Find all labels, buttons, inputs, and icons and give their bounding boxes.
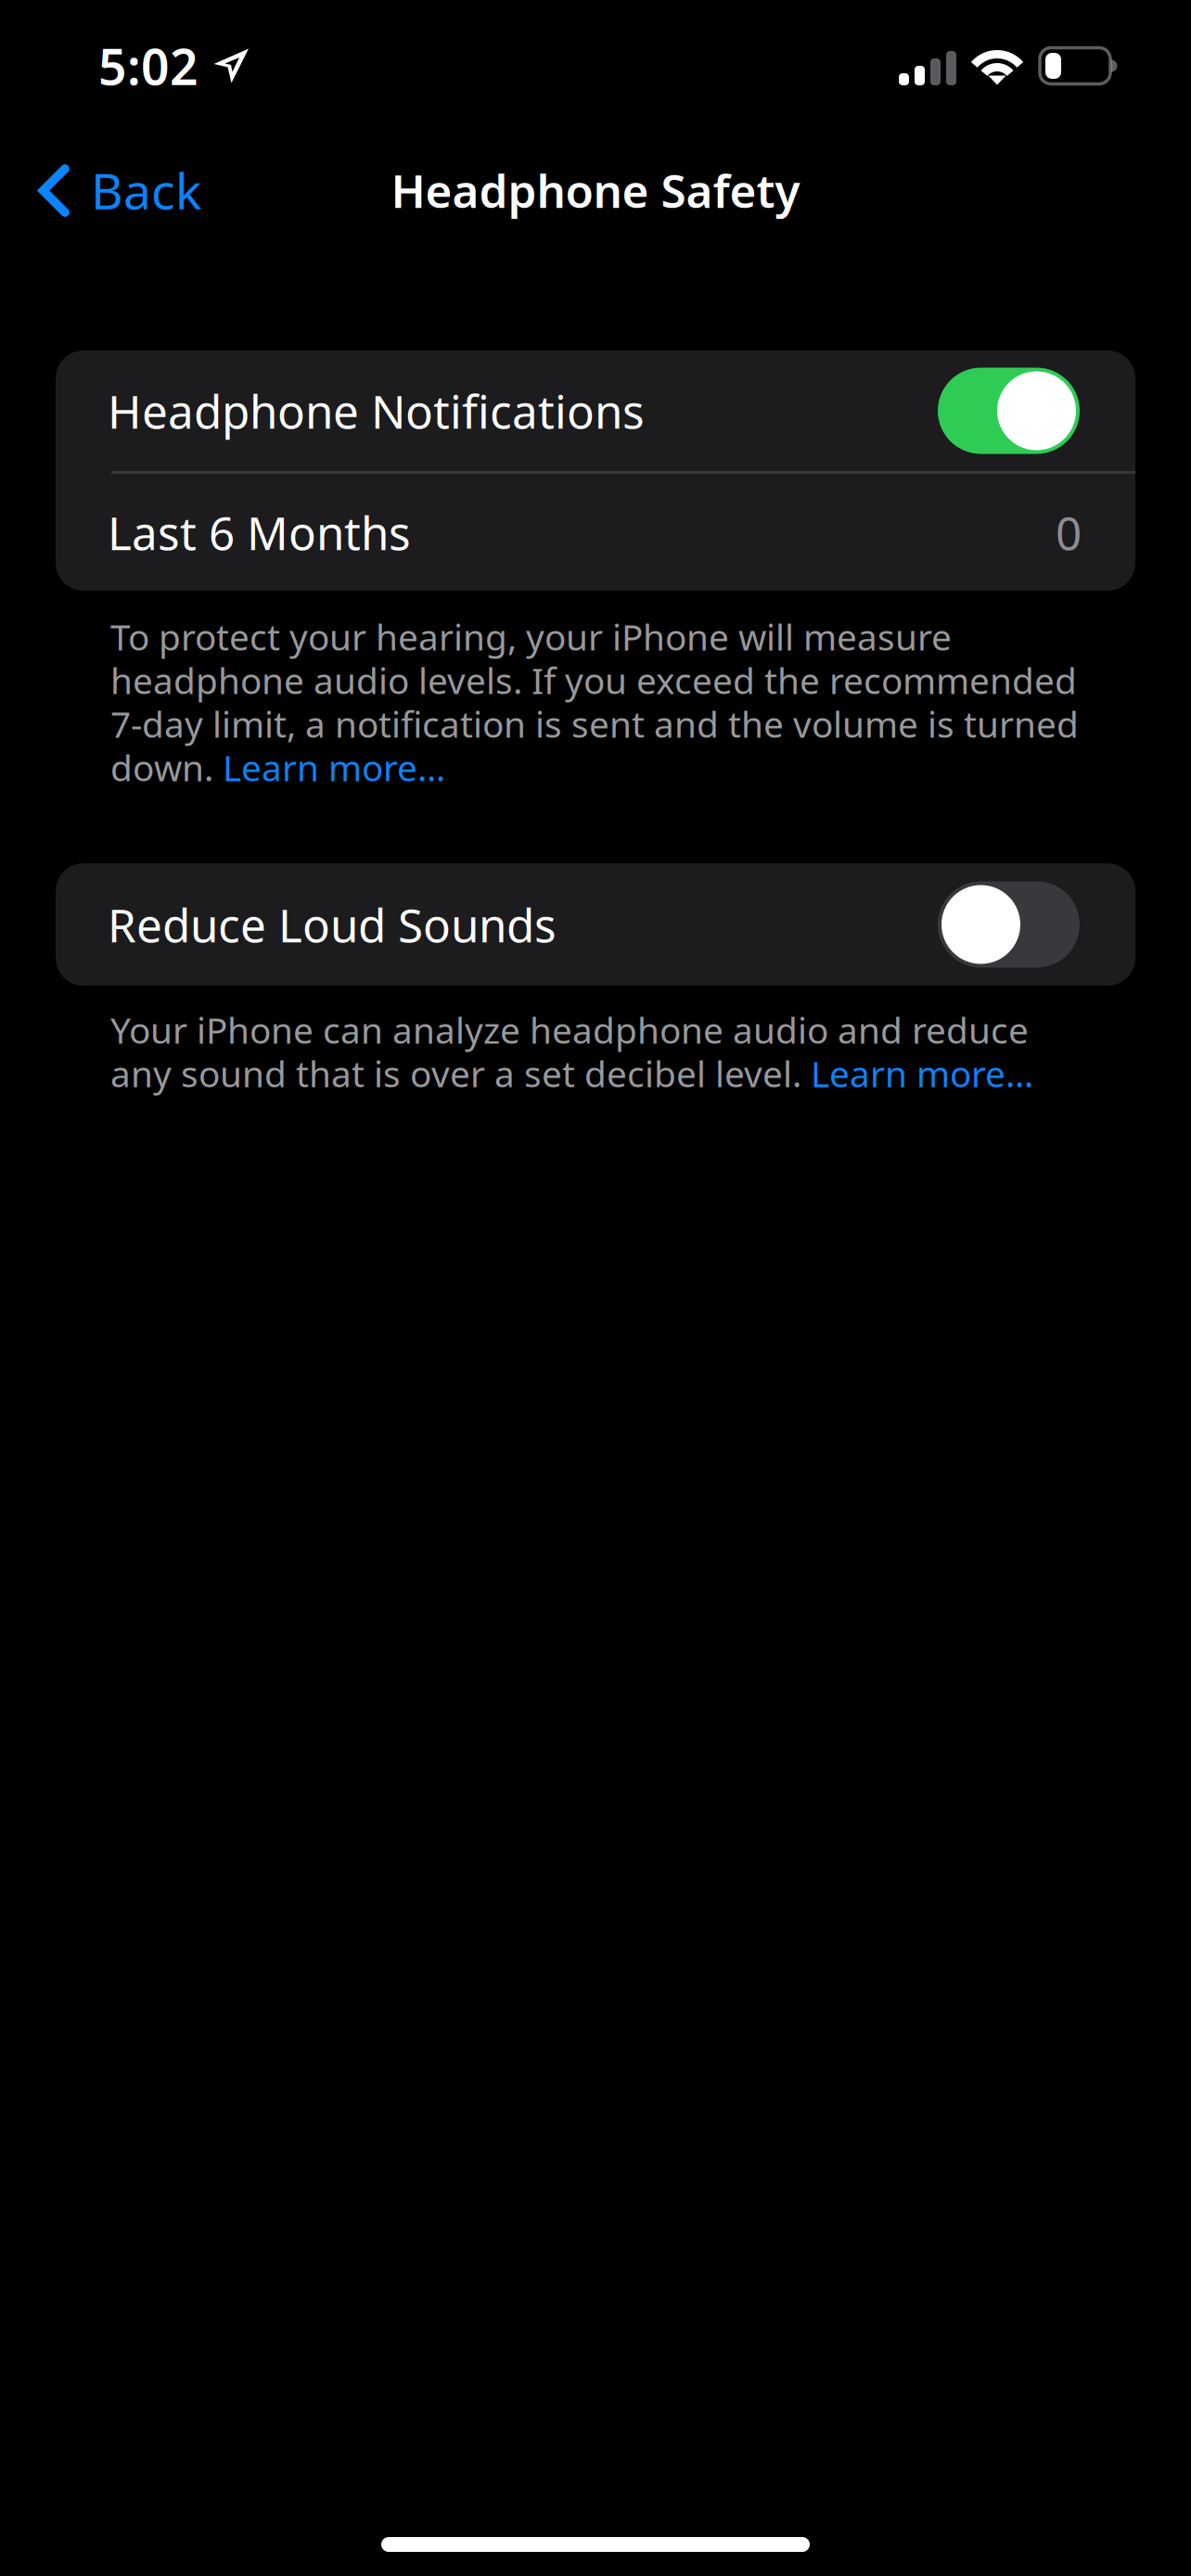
button[interactable]: Learn more xyxy=(223,743,445,791)
button[interactable]: Back xyxy=(19,141,220,240)
button[interactable]: Learn more xyxy=(811,1050,1033,1097)
staticText: 5:02 xyxy=(98,33,198,99)
staticText: Reduce Loud Sounds xyxy=(108,894,557,955)
staticText: any sound that is over a set decibel lev… xyxy=(110,1050,811,1097)
button[interactable]: Last 6 Months xyxy=(56,474,1135,591)
staticText: Your iPhone can analyze headphone audio … xyxy=(110,1006,1029,1053)
button[interactable]: Headphone Notifications xyxy=(56,351,1135,471)
staticText: Last 6 Months xyxy=(108,502,411,563)
staticText: Back xyxy=(91,157,201,223)
staticText: Learn more... xyxy=(223,743,445,791)
staticText: down. xyxy=(110,743,223,791)
staticText: Learn more... xyxy=(811,1050,1033,1097)
staticText: Headphone Notifications xyxy=(108,380,645,441)
staticText: 7-day limit, a notification is sent and … xyxy=(110,700,1079,747)
button[interactable]: Reduce Loud Sounds xyxy=(56,863,1135,986)
staticText: To protect your hearing, your iPhone wil… xyxy=(110,613,952,660)
staticText: headphone audio levels. If you exceed th… xyxy=(110,656,1077,704)
staticText: 0 xyxy=(1056,502,1082,563)
staticText: Headphone Safety xyxy=(391,160,800,220)
